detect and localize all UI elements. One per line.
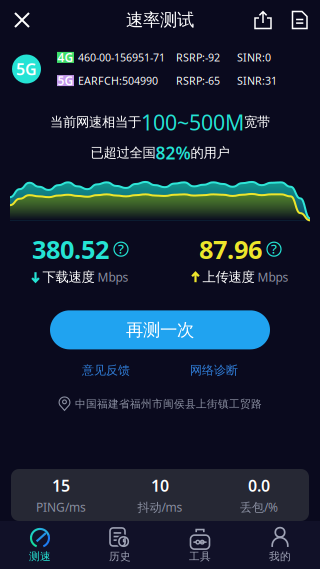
button[interactable]: 报告	[280, 0, 320, 40]
staticText: RSRP:-92	[176, 50, 220, 64]
staticText: 100~500M	[141, 108, 244, 136]
staticText: SINR:0	[237, 50, 271, 64]
button[interactable]: 再测一次	[50, 310, 270, 349]
staticText: Mbps	[257, 269, 288, 285]
staticText: 中国福建省福州市闽侯县上街镇工贸路	[75, 397, 262, 410]
staticText: 意见反馈	[82, 363, 130, 378]
staticText: 宽带	[244, 114, 270, 130]
staticText: 0.0	[248, 475, 270, 496]
staticText: 再测一次	[126, 319, 194, 340]
staticText: 工具	[189, 550, 211, 563]
button[interactable]: 分享	[246, 0, 280, 40]
staticText: 的用户	[190, 145, 229, 161]
staticText: 历史	[109, 550, 131, 563]
staticText: 抖动/ms	[137, 499, 182, 515]
button[interactable]: 意见反馈	[52, 359, 160, 381]
button[interactable]: 我的	[240, 521, 320, 569]
staticText: 速率测试	[126, 9, 194, 31]
staticText: 87.96	[199, 232, 262, 266]
staticText: SINR:31	[237, 73, 277, 88]
staticText: 82%	[155, 141, 190, 164]
staticText: 380.52	[32, 232, 109, 266]
staticText: 5G	[57, 73, 73, 88]
staticText: 4G	[57, 49, 73, 65]
staticText: 丢包/%	[240, 499, 278, 515]
staticText: ?	[271, 240, 277, 257]
button[interactable]: 网络诊断	[160, 359, 268, 381]
staticText: 460-00-156951-71	[78, 50, 165, 64]
button[interactable]: 工具	[160, 521, 240, 569]
staticText: 下载速度	[42, 269, 94, 285]
staticText: RSRP:-65	[176, 73, 220, 88]
staticText: 测速	[29, 550, 51, 563]
staticText: ?	[118, 240, 124, 257]
button[interactable]: 历史	[80, 521, 160, 569]
staticText: 当前网速相当于	[50, 114, 141, 130]
staticText: 我的	[269, 550, 291, 563]
staticText: Mbps	[97, 269, 128, 285]
staticText: 上传速度	[202, 269, 254, 285]
staticText: 网络诊断	[190, 363, 238, 378]
button[interactable]: 关闭	[0, 0, 44, 40]
staticText: 已超过全国	[90, 145, 155, 161]
staticText: 5G	[16, 58, 37, 80]
button[interactable]: 测速	[0, 521, 80, 569]
staticText: 10	[151, 475, 169, 496]
staticText: EARFCH:504990	[78, 73, 158, 88]
staticText: PING/ms	[36, 499, 86, 515]
staticText: 15	[52, 475, 70, 496]
